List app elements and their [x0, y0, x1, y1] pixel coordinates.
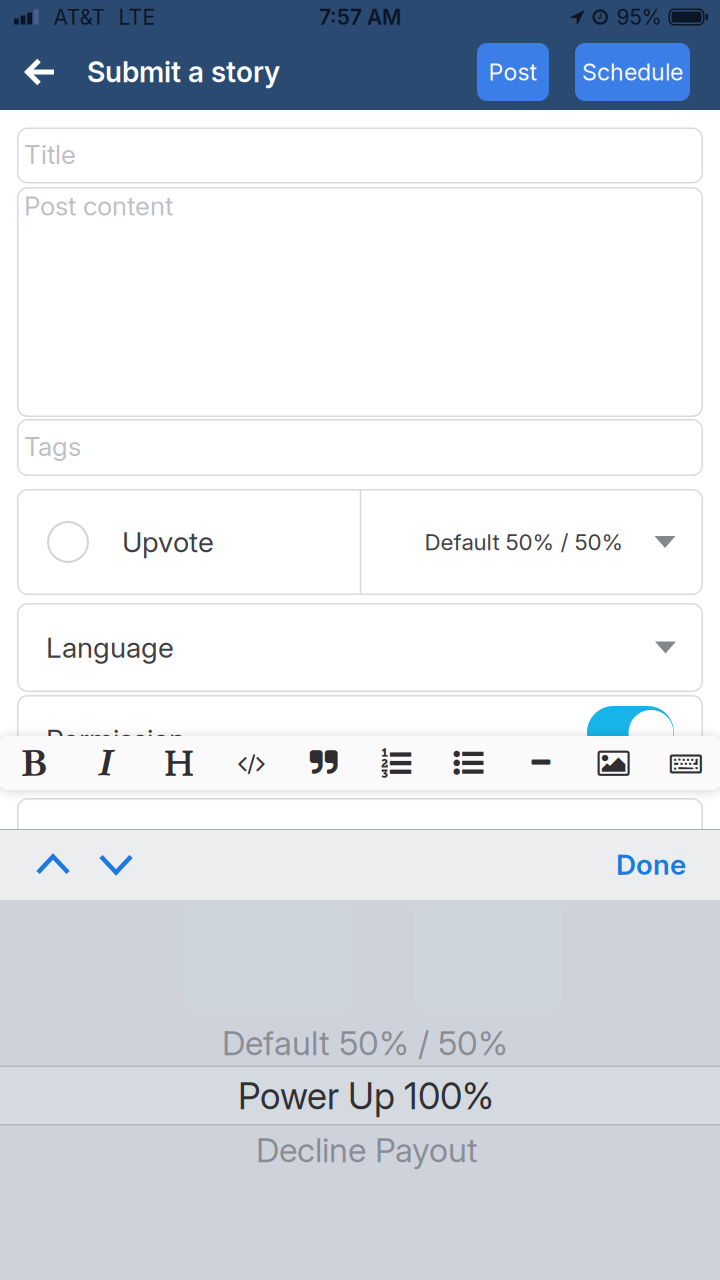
- staticText: Tags: [24, 431, 81, 462]
- button[interactable]: Insert image: [577, 736, 650, 790]
- button[interactable]: Quote: [288, 736, 360, 790]
- staticText: Title: [24, 139, 76, 170]
- staticText: 7:57 AM: [319, 4, 401, 30]
- staticText: Submit a story: [87, 55, 280, 89]
- button[interactable]: Code: [215, 736, 288, 790]
- staticText: Post: [488, 58, 537, 86]
- button[interactable]: Default 50% / 50%: [222, 1023, 508, 1063]
- staticText: 95%: [616, 4, 661, 30]
- button[interactable]: Previous field: [36, 853, 70, 875]
- button[interactable]: Power Up 100%: [238, 1074, 494, 1118]
- button[interactable]: Back: [0, 58, 56, 86]
- staticText: AT&T: [54, 4, 106, 30]
- staticText: : [592, 8, 607, 26]
- staticText: Default 50% / 50%: [424, 528, 623, 555]
- staticText: Permission: [46, 723, 185, 756]
- staticText: Default 50% / 50%: [222, 1023, 508, 1063]
- staticText: Done: [616, 848, 686, 881]
- button[interactable]: Default 50% / 50%: [360, 489, 703, 595]
- button[interactable]: Divider: [505, 736, 577, 790]
- button[interactable]: Bold: [0, 736, 70, 790]
- button[interactable]: Permission: [587, 706, 674, 759]
- staticText: : [310, 748, 338, 778]
- staticText: : [454, 748, 484, 778]
- staticText: : [164, 748, 194, 778]
- staticText: : [531, 751, 550, 775]
- button[interactable]: Schedule: [575, 43, 690, 101]
- button[interactable]: Decline Payout: [256, 1130, 478, 1170]
- staticText: : [381, 748, 411, 778]
- staticText: Decline Payout: [256, 1130, 478, 1170]
- staticText: Power Up 100%: [238, 1074, 494, 1118]
- button[interactable]: Next field: [99, 853, 133, 875]
- button[interactable]: Heading: [143, 736, 215, 790]
- button[interactable]: Done: [616, 848, 686, 881]
- staticText: Schedule: [582, 58, 683, 86]
- staticText: Upvote: [122, 525, 214, 559]
- staticText: Post content: [24, 190, 173, 222]
- button[interactable]: Bulleted list: [432, 736, 505, 790]
- button[interactable]: Language: [17, 603, 703, 692]
- staticText: : [98, 748, 115, 778]
- staticText: : [670, 748, 702, 778]
- staticText: LTE: [119, 4, 156, 30]
- button[interactable]: Italic: [70, 736, 143, 790]
- staticText: : [237, 750, 265, 776]
- staticText: : [597, 748, 629, 778]
- staticText: : [570, 8, 584, 26]
- button[interactable]: Post: [477, 43, 549, 101]
- button[interactable]: Numbered list: [360, 736, 432, 790]
- staticText: : [22, 748, 46, 778]
- staticText: Language: [46, 631, 174, 664]
- button[interactable]: Hide keyboard: [650, 736, 720, 790]
- button[interactable]: Upvote: [17, 489, 360, 595]
